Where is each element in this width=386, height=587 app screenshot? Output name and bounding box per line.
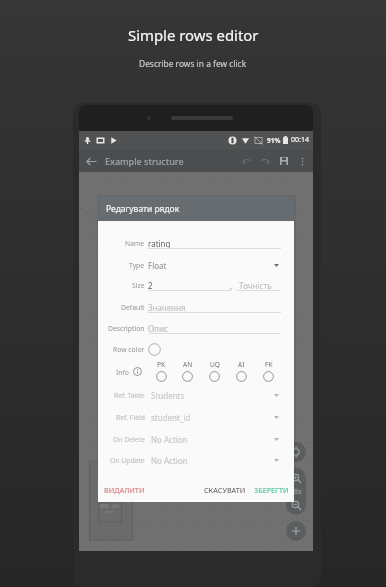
button[interactable]: More options [295, 154, 309, 168]
button[interactable]: Default [98, 298, 294, 316]
staticText: On Update [110, 456, 145, 465]
staticText: On Delete [113, 435, 145, 444]
button[interactable]: Redo [257, 153, 272, 168]
staticText: Точність [239, 280, 272, 291]
staticText: Ref. Table [114, 391, 145, 400]
button[interactable]: On Update [98, 451, 294, 469]
staticText: Значення [148, 302, 186, 313]
staticText: 91% [267, 136, 281, 145]
button[interactable]: Save [277, 154, 291, 168]
staticText: AN [183, 360, 193, 369]
staticText: Describe rows in a few click [139, 58, 247, 69]
staticText: СКАСУВАТИ [204, 485, 246, 495]
button[interactable]: UQ [203, 360, 225, 384]
staticText: No Action [151, 434, 188, 445]
staticText: Name [125, 239, 145, 248]
staticText: ЗБЕРЕГТИ [254, 485, 289, 495]
button[interactable]: Row color [98, 341, 294, 357]
staticText: No Action [151, 455, 188, 466]
staticText: Info [116, 368, 129, 377]
staticText: Simple rows editor [128, 25, 259, 45]
button[interactable]: Size [98, 276, 294, 294]
staticText: UQ [210, 360, 220, 369]
staticText: Description [108, 324, 145, 333]
button[interactable]: AI [230, 360, 252, 384]
staticText: ВИДАЛИТИ [104, 485, 145, 495]
staticText: 2 [148, 280, 153, 291]
button[interactable]: FK [257, 360, 279, 384]
button[interactable]: On Delete [98, 430, 294, 448]
staticText: Size [132, 281, 145, 290]
button[interactable]: Description [98, 319, 294, 337]
button[interactable]: Undo [239, 153, 254, 168]
button[interactable]: AN [176, 360, 198, 384]
button[interactable]: Type [98, 256, 294, 274]
button[interactable]: Zoom in [286, 468, 306, 488]
button[interactable]: Locate [286, 442, 306, 462]
staticText: Example structure [105, 155, 184, 167]
staticText: Students [151, 390, 185, 401]
staticText: , [230, 280, 233, 291]
button[interactable]: Back [84, 154, 98, 168]
button[interactable]: Name [98, 234, 294, 252]
staticText: student_id [151, 412, 191, 423]
staticText: rating [148, 238, 171, 249]
staticText: FK [265, 360, 273, 369]
button[interactable]: Ref. Table [98, 386, 294, 404]
staticText: Редагувати рядок [106, 203, 180, 215]
staticText: Default [121, 303, 145, 312]
staticText: Float [148, 260, 167, 271]
staticText: Type [129, 261, 145, 270]
staticText: 28x [290, 487, 302, 497]
staticText: AI [238, 360, 245, 369]
staticText: 00:14 [291, 135, 309, 145]
staticText: PK [157, 360, 166, 369]
button[interactable]: PK [150, 360, 172, 384]
staticText: Ref. Field [116, 413, 145, 422]
button[interactable]: ЗБЕРЕГТИ [254, 481, 289, 499]
staticText: Row color [113, 345, 145, 354]
staticText: Опис [148, 323, 168, 334]
button[interactable]: СКАСУВАТИ [204, 481, 246, 499]
button[interactable]: ВИДАЛИТИ [104, 481, 145, 499]
button[interactable]: Ref. Field [98, 408, 294, 426]
button[interactable]: Add row [286, 521, 306, 541]
button[interactable]: Zoom out [286, 495, 306, 515]
